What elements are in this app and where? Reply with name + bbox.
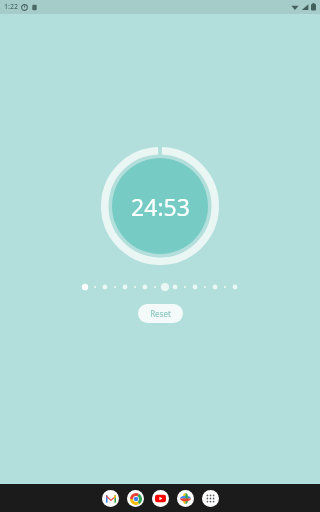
button[interactable]: Reset [138,304,183,323]
staticText: Reset [150,308,171,319]
button[interactable]: Chrome [127,490,144,507]
staticText: 24:53 [131,191,190,222]
button[interactable]: Google Photos [177,490,194,507]
button[interactable]: 24:53 [101,147,219,265]
button[interactable]: YouTube [152,490,169,507]
button[interactable]: Gmail [102,490,119,507]
staticText: 1:22 [4,2,18,12]
button[interactable]: All apps [202,490,219,507]
